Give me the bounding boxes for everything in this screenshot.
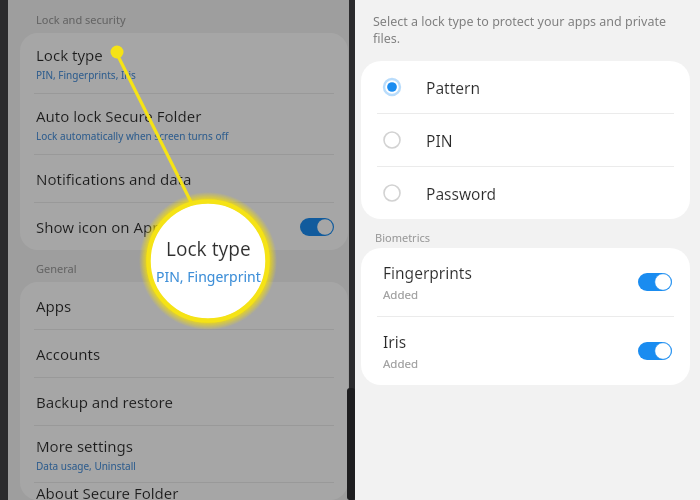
button[interactable]: Backup and restore — [20, 378, 348, 425]
staticText: PIN — [426, 130, 453, 151]
staticText: Lock and security — [36, 12, 126, 27]
staticText: Added — [383, 287, 419, 303]
button[interactable]: About Secure Folder — [20, 483, 348, 500]
button[interactable]: Toggle Iris — [638, 342, 672, 360]
staticText: Lock type — [36, 45, 103, 65]
button[interactable]: Notifications and data — [20, 155, 348, 202]
staticText: Show icon on Apps screen — [36, 217, 220, 237]
button[interactable]: Accounts — [20, 330, 348, 377]
staticText: More settings — [36, 436, 133, 456]
staticText: Select a lock type to protect your apps … — [373, 13, 678, 47]
staticText: Password — [426, 183, 497, 204]
button[interactable]: Iris — [361, 317, 690, 385]
button[interactable]: Password — [361, 167, 690, 219]
button[interactable]: Apps — [20, 282, 348, 329]
button[interactable]: Show icon on Apps screen — [20, 203, 348, 250]
staticText: Fingerprints — [383, 262, 472, 283]
staticText: Lock automatically when screen turns off — [36, 129, 229, 143]
staticText: Accounts — [36, 344, 101, 364]
button[interactable]: Pattern — [361, 61, 690, 113]
staticText: Apps — [36, 296, 72, 316]
staticText: PIN, Fingerprint — [156, 267, 261, 286]
button[interactable]: Fingerprints — [361, 248, 690, 316]
staticText: About Secure Folder — [36, 483, 179, 500]
staticText: General — [36, 261, 77, 276]
staticText: Backup and restore — [36, 392, 173, 412]
staticText: Iris — [383, 331, 407, 352]
button[interactable]: PIN — [361, 114, 690, 166]
button[interactable]: More settings — [20, 426, 348, 482]
button[interactable]: Toggle Show icon on Apps screen — [300, 218, 334, 236]
staticText: Biometrics — [375, 230, 431, 245]
staticText: Added — [383, 356, 419, 372]
staticText: Data usage, Uninstall — [36, 459, 136, 473]
button[interactable]: Toggle Fingerprints — [638, 273, 672, 291]
staticText: PIN, Fingerprints, Iris — [36, 68, 136, 82]
staticText: Auto lock Secure Folder — [36, 106, 202, 126]
staticText: Notifications and data — [36, 169, 192, 189]
staticText: Pattern — [426, 77, 480, 98]
staticText: Lock type — [166, 236, 251, 262]
button[interactable]: Lock type — [20, 33, 348, 93]
button[interactable]: Auto lock Secure Folder — [20, 94, 348, 154]
button[interactable]: Lock type magnified — [150, 203, 266, 319]
